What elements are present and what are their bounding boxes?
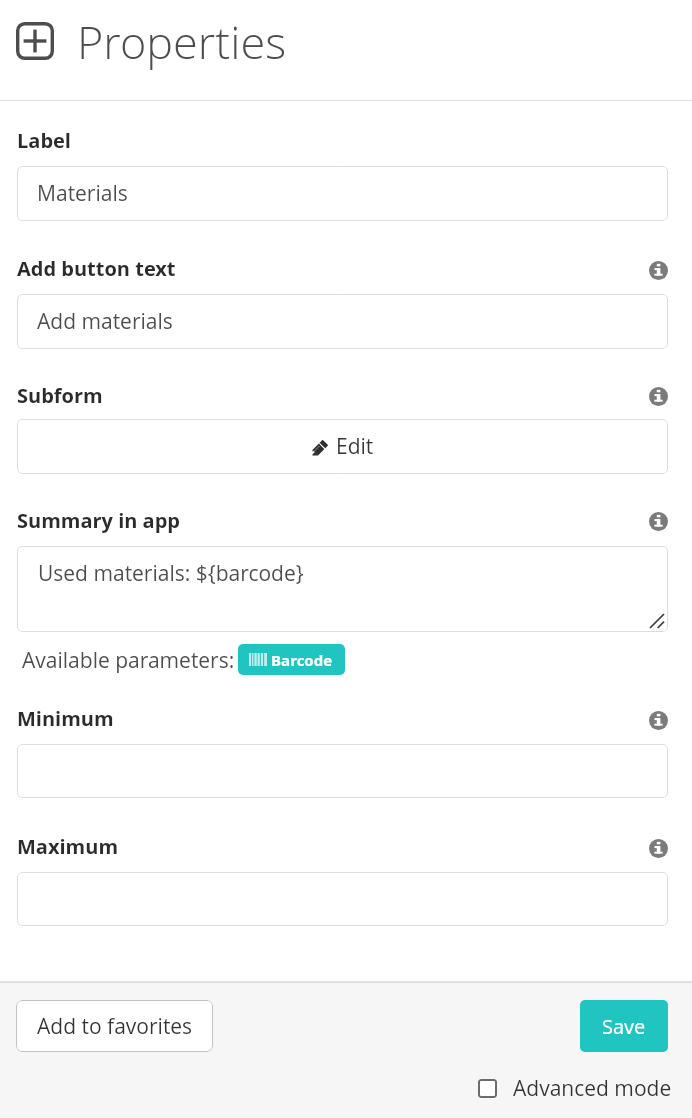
button[interactable]: More information (646, 384, 670, 408)
staticText: Add to favorites (37, 1012, 193, 1041)
button[interactable]: More information (646, 836, 670, 860)
button[interactable]: Save (580, 1000, 668, 1052)
staticText: Used materials: ${barcode} (38, 559, 304, 588)
staticText: Summary in app (17, 507, 181, 534)
button[interactable]: Add property (15, 21, 55, 61)
staticText: Add button text (17, 255, 176, 282)
button[interactable]: Add to favorites (16, 1000, 213, 1052)
staticText: Minimum (17, 705, 114, 732)
button[interactable]: Add materials (17, 294, 668, 349)
button[interactable] (17, 744, 668, 798)
staticText: Save (602, 1013, 646, 1040)
button[interactable]: Materials (17, 166, 668, 221)
staticText: Advanced mode (513, 1074, 672, 1103)
button[interactable]: Barcode (238, 644, 345, 675)
button[interactable]: Advanced mode (478, 1072, 672, 1104)
staticText: Subform (17, 382, 103, 409)
staticText: Barcode (271, 650, 333, 670)
staticText: Properties (77, 11, 287, 72)
staticText: Edit (336, 432, 374, 461)
staticText: Maximum (17, 833, 119, 860)
button[interactable] (17, 872, 668, 926)
button[interactable]: More information (646, 258, 670, 282)
staticText: Label (17, 127, 71, 154)
button[interactable]: More information (646, 708, 670, 732)
button[interactable]: More information (646, 509, 670, 533)
button[interactable]: Used materials: ${barcode} (17, 546, 668, 632)
button[interactable]: Edit (17, 419, 668, 474)
staticText: Available parameters: (22, 646, 235, 675)
staticText: Add materials (37, 307, 173, 336)
staticText: Materials (37, 179, 128, 208)
